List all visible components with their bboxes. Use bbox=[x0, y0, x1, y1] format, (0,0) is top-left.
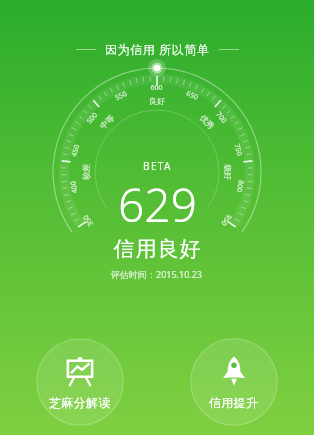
staticText: 信用良好 bbox=[113, 236, 201, 262]
staticText: 信用提升 bbox=[209, 395, 259, 410]
staticText: 芝麻分解读 bbox=[49, 395, 111, 410]
staticText: 629 bbox=[118, 173, 197, 236]
staticText: 因为信用 所以简单 bbox=[105, 41, 210, 57]
button[interactable]: 信用提升 bbox=[190, 338, 278, 426]
staticText: BETA bbox=[143, 159, 172, 173]
button[interactable]: 芝麻分解读 bbox=[36, 338, 124, 426]
staticText: 评估时间：2015.10.23 bbox=[111, 268, 203, 280]
